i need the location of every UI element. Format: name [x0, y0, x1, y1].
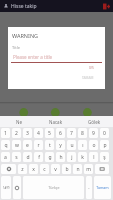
staticText: 4 [37, 130, 40, 137]
staticText: WARNING [12, 32, 39, 39]
staticText: 9 [92, 130, 95, 137]
button[interactable]: x [29, 164, 38, 174]
button[interactable]: 6 [56, 128, 65, 138]
button[interactable]: m [84, 164, 93, 174]
button[interactable]: k [78, 152, 87, 162]
staticText: 1 [4, 130, 7, 137]
staticText: d [26, 154, 30, 161]
staticText: Gölek [88, 119, 101, 125]
button[interactable]: a [1, 152, 10, 162]
staticText: . [88, 184, 90, 191]
staticText: ş [103, 154, 106, 161]
button[interactable]: Shift [1, 164, 16, 174]
staticText: f [38, 154, 40, 161]
button[interactable]: 8 [78, 128, 87, 138]
staticText: c [43, 166, 46, 173]
staticText: 3 [26, 130, 29, 137]
button[interactable]: g [45, 152, 54, 162]
staticText: Please enter a title [13, 54, 53, 60]
staticText: Tamam [96, 185, 109, 190]
staticText: 2 [15, 130, 18, 137]
staticText: 6 [59, 130, 62, 137]
button[interactable]: w [12, 140, 21, 150]
staticText: x [32, 166, 35, 173]
staticText: 0/5 [89, 66, 94, 70]
button[interactable]: . [86, 176, 92, 199]
staticText: 8 [81, 130, 84, 137]
staticText: r [37, 142, 40, 149]
button[interactable]: 2 [12, 128, 21, 138]
button[interactable]: Logout [99, 0, 113, 12]
button[interactable]: t [45, 140, 54, 150]
button[interactable]: ş [100, 152, 109, 162]
button[interactable]: Tamam [94, 176, 111, 199]
staticText: Türkçe [48, 185, 60, 190]
staticText: k [81, 154, 84, 161]
staticText: o [92, 142, 96, 149]
staticText: b [65, 166, 69, 173]
button[interactable]: h [56, 152, 65, 162]
staticText: TAMAM [82, 76, 94, 80]
button[interactable]: 9 [89, 128, 98, 138]
staticText: y [59, 142, 62, 149]
button[interactable]: Ne [0, 116, 37, 127]
staticText: u [70, 142, 74, 149]
staticText: e [26, 142, 29, 149]
staticText: t [49, 142, 51, 149]
button[interactable]: r [34, 140, 43, 150]
button[interactable]: j [67, 152, 76, 162]
button[interactable]: Gölek [75, 116, 113, 127]
button[interactable]: p [100, 140, 109, 150]
staticText: 7 [70, 130, 73, 137]
staticText: n [76, 166, 80, 173]
staticText: Ne [16, 119, 22, 125]
staticText: 5 [48, 130, 51, 137]
button[interactable]: e [23, 140, 32, 150]
button[interactable]: 4 [34, 128, 43, 138]
staticText: z [21, 166, 24, 173]
button[interactable]: l [89, 152, 98, 162]
button[interactable]: d [23, 152, 32, 162]
staticText: Title [12, 45, 20, 50]
button[interactable]: z [18, 164, 27, 174]
button[interactable]: TAMAM [80, 75, 96, 81]
button[interactable]: v [51, 164, 60, 174]
button[interactable]: q [1, 140, 10, 150]
staticText: l [93, 154, 95, 161]
staticText: v [54, 166, 57, 173]
button[interactable]: Emoji [13, 176, 21, 199]
button[interactable]: o [89, 140, 98, 150]
button[interactable]: c [40, 164, 49, 174]
staticText: g [48, 154, 52, 161]
button[interactable]: 1 [1, 128, 10, 138]
staticText: w [15, 142, 19, 149]
button[interactable]: Türkçe [23, 176, 84, 199]
button[interactable]: Account [0, 0, 11, 12]
staticText: h [59, 154, 63, 161]
staticText: ı [82, 142, 84, 149]
staticText: 0 [103, 130, 106, 137]
staticText: p [103, 142, 107, 149]
button[interactable]: b [62, 164, 71, 174]
staticText: Nacak [49, 119, 63, 125]
button[interactable]: 7 [67, 128, 76, 138]
staticText: q [4, 142, 8, 149]
button[interactable]: Backspace [95, 164, 109, 174]
button[interactable]: y [56, 140, 65, 150]
staticText: a [4, 154, 7, 161]
button[interactable]: !#© [1, 176, 11, 199]
staticText: !#© [3, 185, 10, 190]
button[interactable]: f [34, 152, 43, 162]
button[interactable]: n [73, 164, 82, 174]
staticText: s [15, 154, 18, 161]
button[interactable]: u [67, 140, 76, 150]
staticText: m [86, 166, 91, 173]
button[interactable]: 5 [45, 128, 54, 138]
staticText: j [71, 154, 73, 161]
button[interactable]: 3 [23, 128, 32, 138]
button[interactable]: 0 [100, 128, 109, 138]
button[interactable]: s [12, 152, 21, 162]
staticText: Hisse takip [11, 3, 37, 10]
button[interactable]: ı [78, 140, 87, 150]
button[interactable]: Nacak [37, 116, 75, 127]
